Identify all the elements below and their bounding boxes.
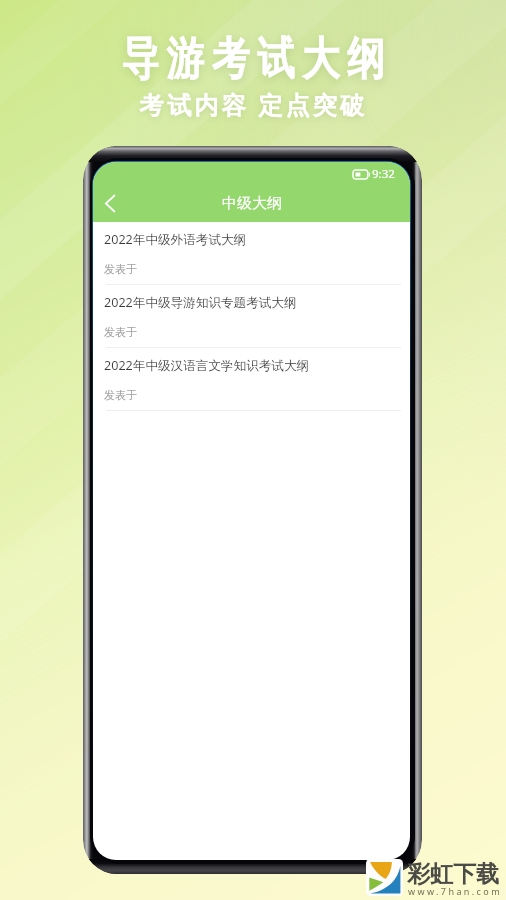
staticText: 彩虹下载 bbox=[407, 860, 499, 889]
staticText: 2022年中级导游知识专题考试大纲 bbox=[104, 294, 297, 311]
staticText: 9:32 bbox=[372, 166, 395, 182]
staticText: 发表于 bbox=[104, 388, 137, 402]
staticText: 2022年中级汉语言文学知识考试大纲 bbox=[104, 357, 310, 374]
button[interactable]: 2022年中级外语考试大纲 bbox=[93, 222, 410, 285]
button[interactable]: Back bbox=[93, 185, 127, 222]
staticText: 发表于 bbox=[104, 262, 137, 276]
staticText: 2022年中级外语考试大纲 bbox=[104, 231, 247, 248]
staticText: 导游考试大纲 bbox=[118, 30, 388, 87]
staticText: 中级大纲 bbox=[222, 194, 282, 213]
staticText: 发表于 bbox=[104, 325, 137, 339]
staticText: 考试内容 定点突破 bbox=[140, 87, 367, 120]
button[interactable]: 2022年中级汉语言文学知识考试大纲 bbox=[93, 348, 410, 411]
button[interactable]: 2022年中级导游知识专题考试大纲 bbox=[93, 285, 410, 348]
staticText: www.7han.com bbox=[408, 885, 502, 897]
